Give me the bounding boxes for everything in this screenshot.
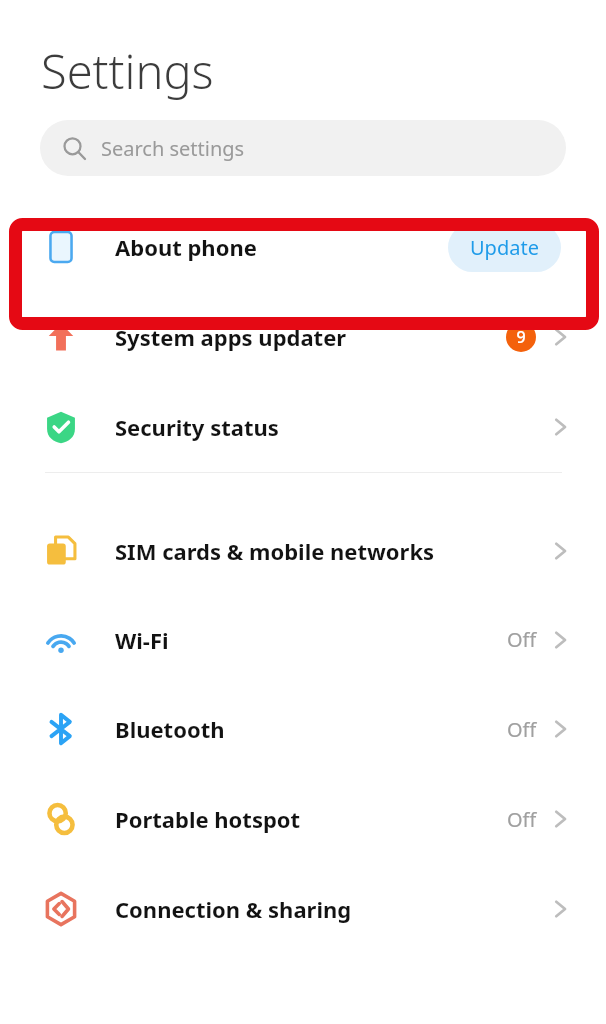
other: Bluetooth bbox=[44, 712, 78, 746]
other: System apps updater bbox=[44, 320, 78, 354]
other: SIM cards & mobile networks bbox=[44, 534, 78, 568]
staticText: Connection & sharing bbox=[115, 894, 549, 924]
other: Portable hotspot bbox=[44, 802, 78, 836]
staticText: Wi-Fi bbox=[115, 625, 507, 655]
other: Connection & sharing bbox=[44, 892, 78, 926]
button[interactable]: Wi-Fi bbox=[0, 595, 606, 684]
staticText: Settings bbox=[41, 39, 214, 103]
staticText: Security status bbox=[115, 412, 549, 442]
other: Security status bbox=[44, 410, 78, 444]
button[interactable]: Connection & sharing bbox=[0, 864, 606, 954]
staticText: Portable hotspot bbox=[115, 804, 507, 834]
staticText: Off bbox=[507, 626, 537, 653]
staticText: SIM cards & mobile networks bbox=[115, 536, 549, 566]
staticText: 9 bbox=[516, 326, 526, 348]
button[interactable]: About phone bbox=[0, 202, 606, 292]
staticText: Search settings bbox=[101, 135, 245, 162]
other: About phone bbox=[44, 230, 78, 264]
button[interactable]: Security status bbox=[0, 382, 606, 472]
button[interactable]: Portable hotspot bbox=[0, 774, 606, 864]
button[interactable]: SIM cards & mobile networks bbox=[0, 506, 606, 595]
staticText: Bluetooth bbox=[115, 714, 507, 744]
button[interactable]: Bluetooth bbox=[0, 684, 606, 774]
staticText: About phone bbox=[115, 232, 448, 262]
button[interactable]: Update bbox=[448, 223, 561, 272]
staticText: Off bbox=[507, 716, 537, 743]
staticText: System apps updater bbox=[115, 322, 506, 352]
button[interactable]: Search settings bbox=[40, 120, 566, 176]
button[interactable]: System apps updater bbox=[0, 292, 606, 382]
staticText: Update bbox=[470, 234, 539, 261]
staticText: Off bbox=[507, 806, 537, 833]
other: Wi-Fi bbox=[44, 623, 78, 657]
